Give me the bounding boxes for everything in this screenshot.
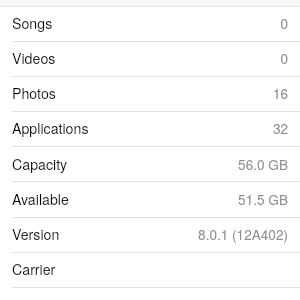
staticText: Capacity (12, 154, 68, 174)
staticText: Version (12, 224, 60, 244)
staticText: 56.0 GB (238, 154, 288, 173)
button[interactable]: Applications (0, 112, 300, 146)
button[interactable]: Videos (0, 42, 300, 76)
button[interactable]: Capacity (0, 148, 300, 182)
staticText: 0 (280, 13, 288, 32)
staticText: Photos (12, 83, 56, 103)
staticText: Carrier (12, 259, 56, 279)
button[interactable]: Songs (0, 7, 300, 41)
button[interactable]: Available (0, 183, 300, 217)
button[interactable]: Carrier (0, 253, 300, 287)
staticText: 0 (280, 48, 288, 67)
staticText: Available (12, 189, 69, 209)
staticText: 51.5 GB (238, 189, 288, 208)
staticText: 16 (272, 83, 288, 102)
staticText: Videos (12, 48, 56, 68)
staticText: 8.0.1 (12A402) (198, 224, 288, 243)
staticText: Songs (12, 13, 53, 33)
staticText: Applications (12, 118, 89, 138)
staticText: 32 (272, 118, 288, 137)
button[interactable]: Photos (0, 77, 300, 111)
button[interactable]: Version (0, 218, 300, 252)
